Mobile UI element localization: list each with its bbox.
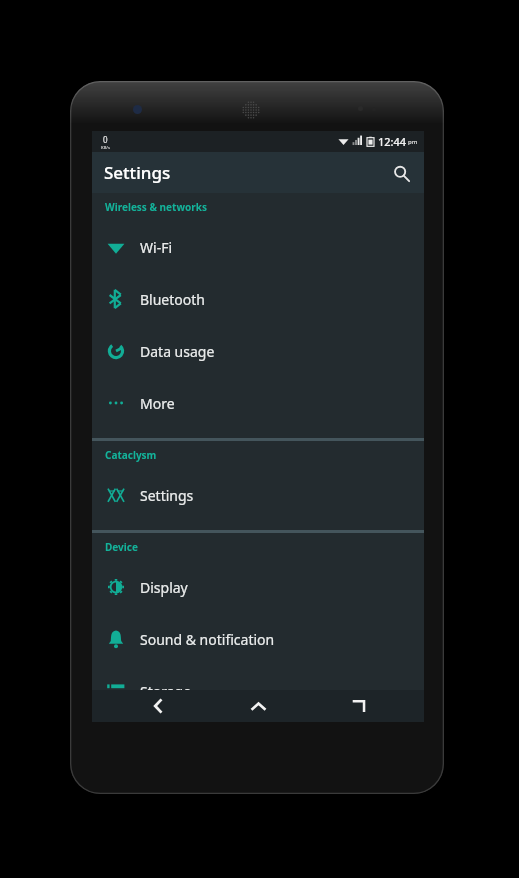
staticText: Wireless & networks [105,200,207,214]
button[interactable]: Storage [92,665,424,717]
staticText: Bluetooth [140,290,205,309]
staticText: Storage [140,682,192,701]
button[interactable]: Home [223,690,293,722]
staticText: Display [140,578,188,597]
button[interactable]: More [92,377,424,429]
button[interactable]: Data usage [92,325,424,377]
staticText: 12:44 [378,134,407,149]
staticText: KB/s [101,145,110,150]
button[interactable]: Sound & notification [92,613,424,665]
button[interactable]: Bluetooth [92,273,424,325]
button[interactable]: Settings [92,469,424,521]
button[interactable]: Wi-Fi [92,221,424,273]
button[interactable]: Recent apps [324,690,394,722]
staticText: Wi-Fi [140,238,173,257]
staticText: Data usage [140,342,215,361]
staticText: Settings [140,486,194,505]
staticText: pm [408,138,418,146]
staticText: Sound & notification [140,630,275,649]
staticText: Settings [104,161,171,184]
staticText: Cataclysm [105,448,157,462]
staticText: 0 [103,134,108,145]
staticText: Device [105,540,138,554]
button[interactable]: Search [384,156,418,190]
button[interactable]: Back [123,690,193,722]
staticText: More [140,394,175,413]
button[interactable]: Display [92,561,424,613]
